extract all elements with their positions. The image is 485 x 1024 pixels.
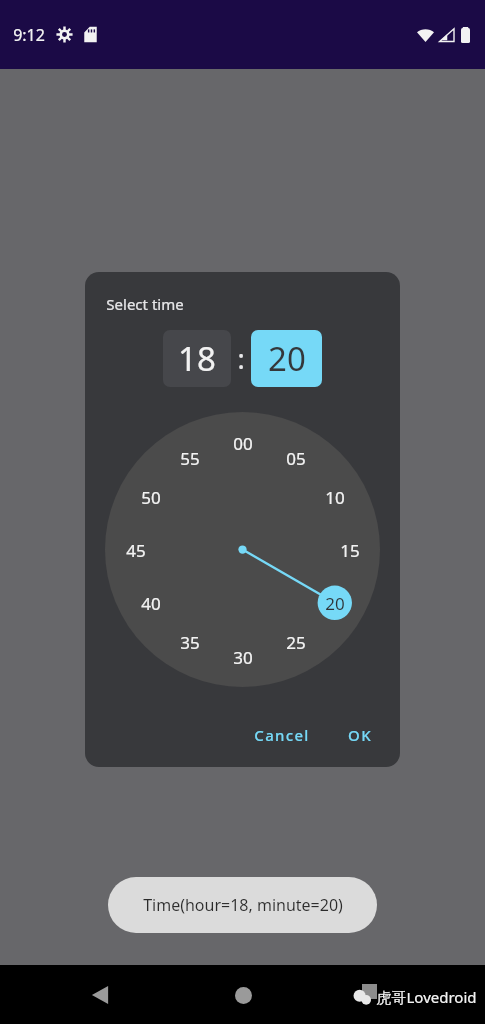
staticText: 50 <box>141 486 161 509</box>
staticText: 40 <box>141 592 161 615</box>
button[interactable]: 20 <box>251 330 322 387</box>
button[interactable]: 00 <box>226 426 260 460</box>
staticText: 15 <box>340 539 360 562</box>
button[interactable]: 25 <box>279 625 313 659</box>
button[interactable]: 18 <box>163 330 231 387</box>
staticText: 18 <box>178 336 216 381</box>
other: Wi-Fi <box>417 28 434 42</box>
button[interactable]: 45 <box>119 533 153 567</box>
staticText: OK <box>348 725 372 745</box>
staticText: Time(hour=18, minute=20) <box>143 894 343 916</box>
staticText: 20 <box>268 336 306 381</box>
staticText: 虎哥Lovedroid <box>376 987 477 1007</box>
other: Signal <box>439 28 454 42</box>
button[interactable]: 05 <box>279 441 313 475</box>
staticText: 05 <box>286 447 306 470</box>
staticText: 9:12 <box>13 24 45 46</box>
button[interactable]: Time(hour=18, minute=20) <box>108 877 377 933</box>
staticText: 55 <box>180 447 200 470</box>
button[interactable]: Home <box>221 973 265 1017</box>
button[interactable]: 35 <box>173 625 207 659</box>
staticText: 30 <box>233 646 253 669</box>
button[interactable]: Recents <box>349 971 389 1011</box>
button[interactable]: 10 <box>318 480 352 514</box>
button[interactable]: 20 <box>318 586 352 620</box>
button[interactable]: 50 <box>134 480 168 514</box>
button[interactable]: Back <box>78 973 122 1017</box>
staticText: 35 <box>180 631 200 654</box>
button[interactable]: 15 <box>333 533 367 567</box>
other: Settings <box>56 26 73 43</box>
button[interactable]: 30 <box>226 640 260 674</box>
staticText: Cancel <box>254 725 310 745</box>
staticText: 20 <box>325 592 345 615</box>
staticText: : <box>237 340 245 377</box>
other: Battery <box>461 27 470 43</box>
button[interactable]: Cancel <box>246 717 318 753</box>
staticText: 25 <box>286 631 306 654</box>
staticText: 10 <box>325 486 345 509</box>
button[interactable]: OK <box>340 717 380 753</box>
other: SD card <box>84 26 97 43</box>
staticText: 45 <box>126 539 146 562</box>
staticText: Select time <box>106 294 184 314</box>
staticText: 00 <box>233 432 253 455</box>
button[interactable]: 40 <box>134 586 168 620</box>
button[interactable]: 55 <box>173 441 207 475</box>
